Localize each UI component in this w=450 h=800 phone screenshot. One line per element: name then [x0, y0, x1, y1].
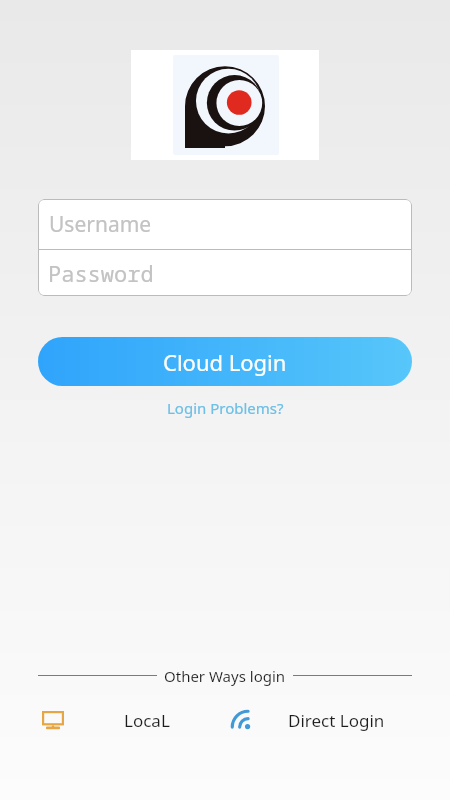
other: Local login — [42, 711, 64, 729]
staticText: Other Ways login — [164, 666, 286, 686]
staticText: Direct Login — [288, 709, 385, 732]
staticText: LocaL — [124, 709, 170, 732]
staticText: Cloud Login — [163, 347, 287, 377]
staticText: Login Problems? — [167, 398, 284, 418]
button[interactable]: Username — [38, 199, 412, 249]
staticText: Username — [49, 210, 152, 239]
button[interactable]: Cloud Login — [38, 337, 412, 386]
button[interactable]: Password — [38, 250, 412, 296]
button[interactable]: Login Problems? — [155, 396, 295, 420]
button[interactable]: Direct login — [212, 702, 412, 738]
button[interactable]: Local login — [14, 702, 204, 738]
staticText: Password — [48, 258, 154, 288]
other: Direct login — [232, 711, 250, 729]
